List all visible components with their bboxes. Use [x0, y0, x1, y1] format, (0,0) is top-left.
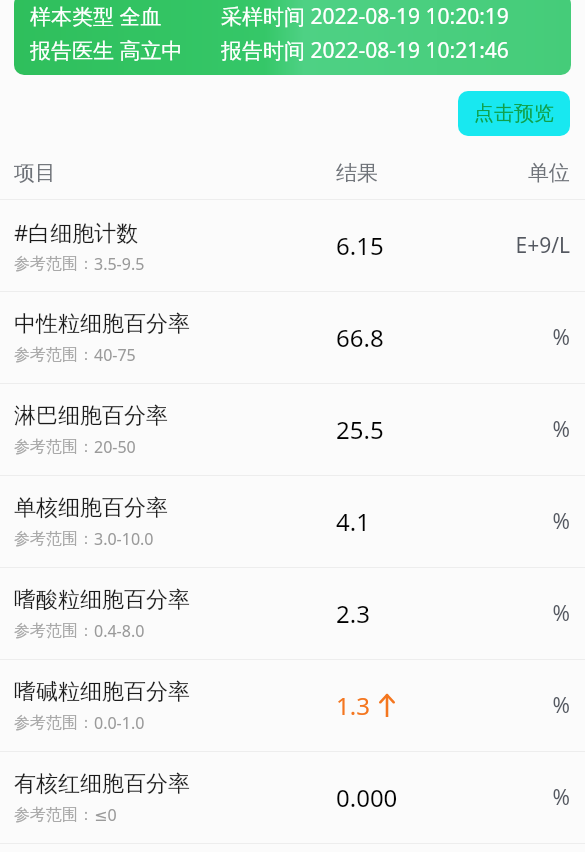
staticText: ≤0	[94, 804, 117, 826]
staticText: %	[552, 691, 570, 720]
staticText: 66.8	[336, 321, 384, 354]
staticText: 参考范围：	[14, 621, 94, 641]
staticText: 中性粒细胞百分率	[14, 310, 190, 338]
button[interactable]: 有核红细胞百分率	[0, 752, 585, 843]
staticText: %	[552, 599, 570, 628]
staticText: 参考范围：	[14, 529, 94, 549]
staticText: %	[552, 783, 570, 812]
staticText: 0.0-1.0	[94, 712, 145, 734]
staticText: %	[552, 507, 570, 536]
staticText: 4.1	[336, 505, 370, 538]
staticText: 嗜碱粒细胞百分率	[14, 678, 190, 706]
button[interactable]: 样本类型 全血	[14, 0, 571, 75]
button[interactable]: 嗜酸粒细胞百分率	[0, 568, 585, 659]
staticText: 结果	[336, 160, 378, 186]
button[interactable]: 淋巴细胞百分率	[0, 384, 585, 475]
staticText: %	[552, 415, 570, 444]
staticText: 报告时间 2022-08-19 10:21:46	[221, 36, 509, 65]
staticText: 嗜酸粒细胞百分率	[14, 586, 190, 614]
staticText: 3.5-9.5	[94, 253, 145, 275]
staticText: 单位	[528, 160, 570, 186]
staticText: 3.0-10.0	[94, 528, 154, 550]
staticText: 参考范围：	[14, 345, 94, 365]
button[interactable]: 点击预览	[458, 91, 570, 136]
button[interactable]: #白细胞计数	[0, 200, 585, 291]
staticText: E+9/L	[515, 231, 570, 260]
staticText: 淋巴细胞百分率	[14, 402, 168, 430]
staticText: 单核细胞百分率	[14, 494, 168, 522]
staticText: 0.4-8.0	[94, 620, 145, 642]
staticText: 项目	[14, 160, 56, 186]
staticText: 25.5	[336, 413, 384, 446]
staticText: 1.3	[336, 689, 370, 722]
staticText: 2.3	[336, 597, 370, 630]
staticText: 40-75	[94, 344, 136, 366]
staticText: 点击预览	[474, 101, 554, 126]
staticText: 20-50	[94, 436, 136, 458]
staticText: 报告医生 高立中	[30, 36, 183, 65]
staticText: 有核红细胞百分率	[14, 770, 190, 798]
staticText: 0.000	[336, 781, 398, 814]
staticText: 参考范围：	[14, 713, 94, 733]
staticText: #白细胞计数	[14, 217, 139, 247]
staticText: 采样时间 2022-08-19 10:20:19	[221, 2, 509, 31]
button[interactable]: 嗜碱粒细胞百分率	[0, 660, 585, 751]
staticText: 6.15	[336, 229, 384, 262]
staticText: 参考范围：	[14, 254, 94, 274]
other: 偏高	[379, 695, 395, 717]
button[interactable]: 中性粒细胞百分率	[0, 292, 585, 383]
staticText: %	[552, 323, 570, 352]
staticText: 参考范围：	[14, 437, 94, 457]
staticText: 样本类型 全血	[30, 2, 162, 31]
staticText: 参考范围：	[14, 805, 94, 825]
button[interactable]: 单核细胞百分率	[0, 476, 585, 567]
